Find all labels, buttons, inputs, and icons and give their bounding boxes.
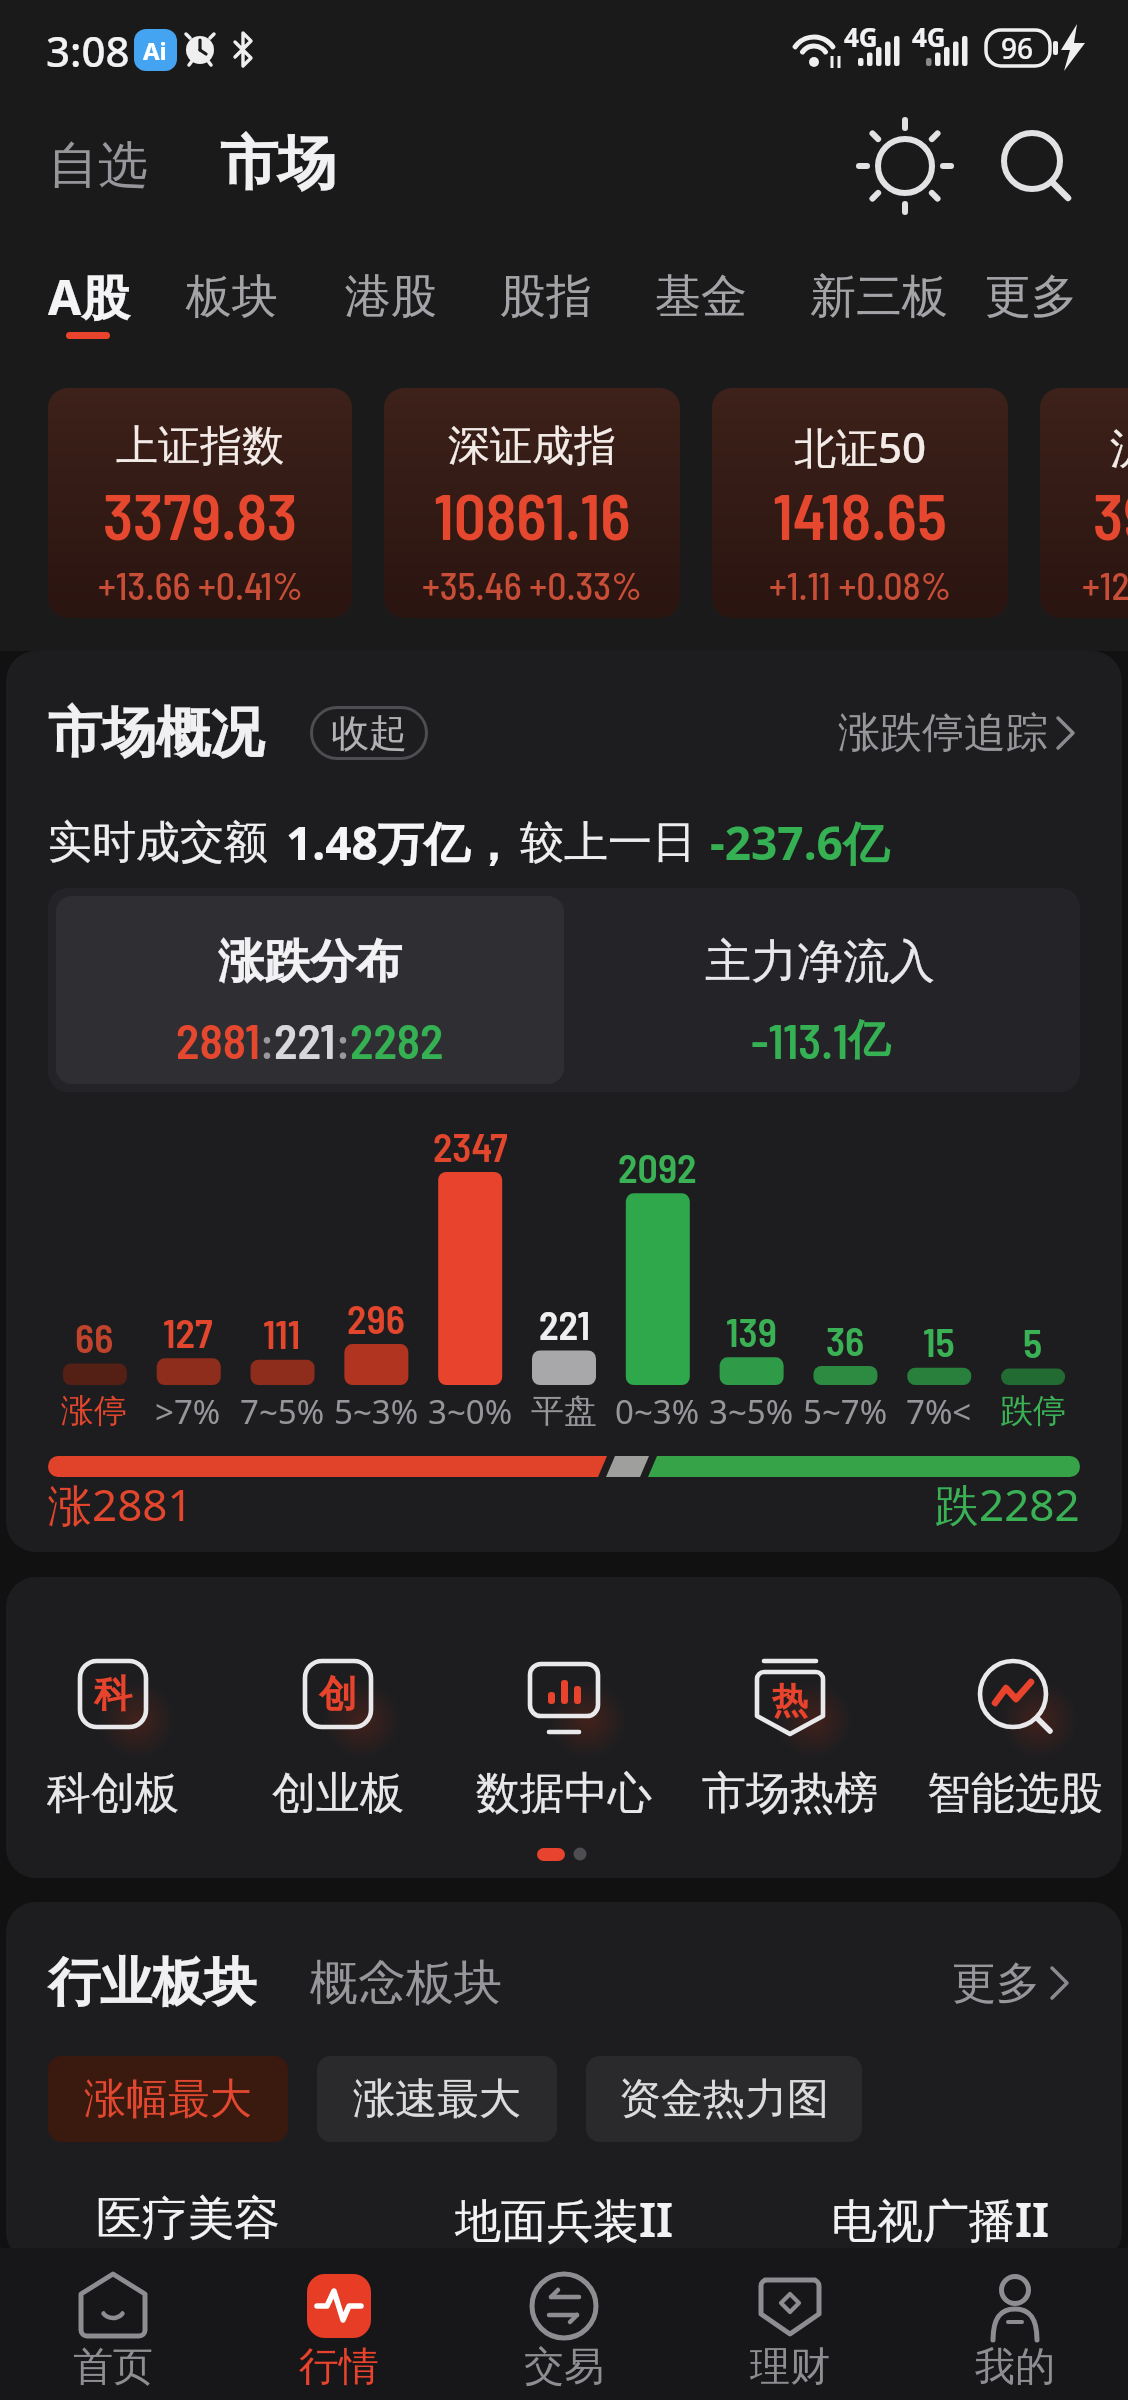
staticText: 4G xyxy=(844,19,878,54)
staticText: 涨幅最大 xyxy=(84,2073,252,2126)
button[interactable] xyxy=(38,2256,188,2396)
staticText: 概念板块 xyxy=(310,1953,502,2013)
button[interactable] xyxy=(384,388,680,618)
staticText: 3379.83 xyxy=(103,477,298,553)
staticText: 66 xyxy=(75,1313,114,1361)
staticText: 5 xyxy=(1023,1318,1043,1366)
button[interactable]: 基金 xyxy=(655,262,761,332)
staticText: 医疗美容 xyxy=(96,2190,280,2248)
button[interactable] xyxy=(48,388,352,618)
staticText: 主力净流入 xyxy=(705,933,935,991)
button[interactable] xyxy=(846,706,1082,760)
staticText: 4G xyxy=(912,19,946,54)
staticText: 较上一日 xyxy=(520,815,696,870)
staticText: 2282 xyxy=(350,1011,444,1069)
staticText: 板块 xyxy=(186,268,278,326)
staticText: 2881 xyxy=(176,1011,260,1069)
button[interactable]: 板块 xyxy=(186,262,292,332)
staticText: 跌2282 xyxy=(935,1474,1080,1534)
button[interactable] xyxy=(1040,388,1128,618)
staticText: 221 xyxy=(539,1300,590,1348)
staticText: 基金 xyxy=(655,268,747,326)
staticText: 港股 xyxy=(345,268,437,326)
staticText: +12.47 +0.32% xyxy=(1082,562,1128,608)
button[interactable] xyxy=(712,388,1008,618)
staticText: 首页 xyxy=(73,2341,153,2391)
staticText: 平盘 xyxy=(531,1390,597,1432)
button[interactable] xyxy=(48,2056,288,2142)
staticText: 行业板块 xyxy=(48,1950,256,2016)
staticText: 智能选股 xyxy=(927,1766,1103,1821)
button[interactable] xyxy=(18,1645,208,1835)
staticText: 股指 xyxy=(500,268,592,326)
staticText: 跌停 xyxy=(1000,1390,1066,1432)
button[interactable]: 概念板块 xyxy=(310,1950,540,2016)
staticText: 7~5% xyxy=(240,1389,325,1434)
button[interactable]: A股 xyxy=(48,262,154,332)
staticText: 更多 xyxy=(952,1956,1040,2011)
staticText: 3:08 xyxy=(46,22,130,79)
staticText: 亿 xyxy=(848,1014,890,1067)
button[interactable] xyxy=(56,896,564,1084)
staticText: 市场概况 xyxy=(48,699,264,767)
button[interactable] xyxy=(695,1645,885,1835)
staticText: 221 xyxy=(274,1011,336,1069)
button[interactable] xyxy=(940,2256,1090,2396)
staticText: 我的 xyxy=(975,2341,1055,2391)
button[interactable]: 股指 xyxy=(500,262,606,332)
staticText: 3~5% xyxy=(709,1389,794,1434)
button[interactable]: 新三板 xyxy=(810,262,964,332)
staticText: 2092 xyxy=(618,1143,697,1191)
button[interactable] xyxy=(855,116,955,216)
staticText: 自选 xyxy=(48,134,148,197)
staticText: 北证50 xyxy=(794,418,927,475)
staticText: 2347 xyxy=(433,1122,508,1170)
staticText: 理财 xyxy=(750,2341,830,2391)
staticText: 行情 xyxy=(299,2341,379,2391)
staticText: 涨2881 xyxy=(48,1474,193,1534)
button[interactable]: 自选 xyxy=(48,130,158,200)
staticText: 1.48万亿， xyxy=(286,811,516,874)
staticText: >7% xyxy=(155,1389,221,1434)
staticText: 0~3% xyxy=(615,1389,700,1434)
button[interactable]: 更多 xyxy=(985,262,1091,332)
staticText: 市场热榜 xyxy=(702,1766,878,1821)
staticText: 5~3% xyxy=(334,1389,419,1434)
button[interactable] xyxy=(264,2256,414,2396)
staticText: 市场 xyxy=(220,127,336,200)
button[interactable] xyxy=(982,112,1082,212)
staticText: 更多 xyxy=(985,268,1077,326)
button[interactable] xyxy=(243,1645,433,1835)
staticText: 涨跌分布 xyxy=(218,933,402,991)
staticText: 数据中心 xyxy=(476,1766,652,1821)
button[interactable] xyxy=(48,888,1080,1092)
staticText: 地面兵装II xyxy=(455,2188,674,2251)
button[interactable] xyxy=(715,2256,865,2396)
staticText: 交易 xyxy=(524,2341,604,2391)
staticText: 新三板 xyxy=(810,268,948,326)
staticText: : xyxy=(260,1013,274,1068)
staticText: 296 xyxy=(347,1294,405,1342)
staticText: 科 xyxy=(94,1670,132,1718)
staticText: +35.46 +0.33% xyxy=(422,562,642,608)
staticText: 电视广播II xyxy=(831,2188,1050,2251)
staticText: : xyxy=(336,1013,350,1068)
staticText: 36 xyxy=(826,1316,865,1364)
staticText: 7%< xyxy=(906,1389,972,1434)
button[interactable] xyxy=(469,1645,659,1835)
staticText: +13.66 +0.41% xyxy=(98,562,303,608)
staticText: 139 xyxy=(726,1307,777,1355)
button[interactable] xyxy=(940,1950,1080,2016)
button[interactable] xyxy=(920,1645,1110,1835)
button[interactable]: 港股 xyxy=(345,262,451,332)
staticText: 15 xyxy=(923,1317,955,1365)
staticText: 沪深300 xyxy=(1110,418,1128,475)
button[interactable] xyxy=(317,2056,557,2142)
staticText: 创业板 xyxy=(272,1766,404,1821)
button[interactable]: 收起 xyxy=(310,706,428,760)
staticText: 上证指数 xyxy=(116,420,284,473)
staticText: 涨跌停追踪 xyxy=(838,707,1048,760)
button[interactable] xyxy=(586,2056,862,2142)
button[interactable] xyxy=(489,2256,639,2396)
staticText: 3947.62 xyxy=(1093,477,1128,553)
